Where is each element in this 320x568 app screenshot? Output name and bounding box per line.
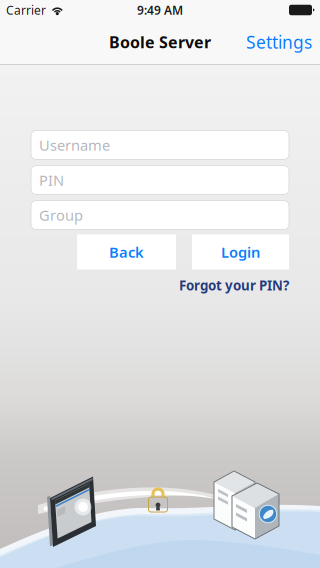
staticText: PIN [39, 170, 64, 190]
button[interactable]: Login [192, 234, 289, 269]
staticText: 9:49 AM [137, 2, 183, 18]
staticText: Settings [246, 30, 312, 53]
staticText: Carrier [6, 2, 46, 18]
button[interactable]: Forgot your PIN? [179, 276, 289, 294]
staticText: Login [221, 242, 260, 262]
button[interactable]: Settings [234, 20, 320, 64]
staticText: Back [109, 242, 144, 262]
staticText: Username [39, 135, 110, 155]
staticText: Forgot your PIN? [179, 276, 289, 294]
button[interactable]: Back [77, 234, 176, 269]
staticText: Group [39, 205, 83, 225]
staticText: Boole Server [109, 31, 211, 53]
